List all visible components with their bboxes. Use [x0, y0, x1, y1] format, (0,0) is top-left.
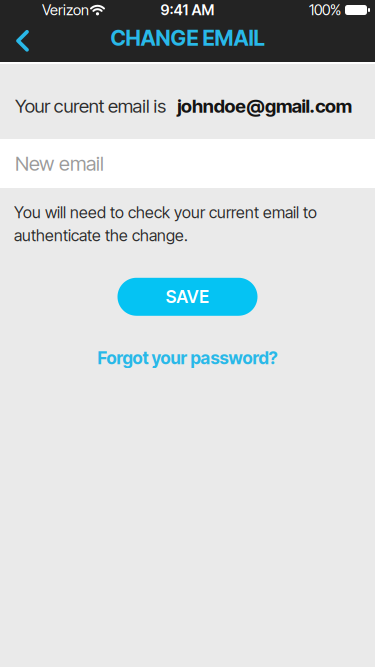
staticText: 9:41 AM — [160, 1, 214, 19]
button[interactable]: Forgot your password? — [97, 348, 277, 368]
button[interactable]: Back — [0, 20, 29, 62]
staticText: Forgot your password? — [97, 348, 277, 368]
staticText: CHANGE EMAIL — [110, 25, 264, 51]
staticText: You will need to check your current emai… — [14, 203, 317, 245]
staticText: Verizon — [42, 1, 89, 19]
staticText: Your curent email is — [15, 95, 166, 117]
button[interactable]: New email — [0, 139, 375, 188]
staticText: 100% — [309, 1, 341, 19]
staticText: SAVE — [166, 287, 209, 307]
button[interactable]: SAVE — [117, 278, 257, 316]
staticText: New email — [15, 152, 104, 175]
staticText: johndoe@gmail.com — [177, 95, 352, 117]
